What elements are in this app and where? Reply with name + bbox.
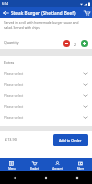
button[interactable]: Please select	[0, 112, 92, 123]
staticText: Menu	[8, 167, 16, 171]
staticText: Please select	[4, 105, 24, 109]
staticText: Please select	[4, 116, 24, 120]
button[interactable]: Account	[46, 158, 69, 171]
staticText: 2	[74, 42, 77, 47]
staticText: 6:14	[2, 2, 8, 6]
staticText: Basket	[30, 167, 39, 171]
staticText: Steak Burger (Shetland Beef)	[11, 10, 76, 16]
staticText: Account	[52, 167, 63, 171]
button[interactable]: Add to Order	[53, 134, 88, 146]
staticText: Served in a roll with homemade burger sa…	[4, 21, 88, 30]
button[interactable]: Back	[0, 7, 11, 18]
staticText: Please select	[4, 94, 24, 98]
button[interactable]: Basket	[23, 158, 46, 171]
staticText: More	[77, 167, 84, 171]
staticText: Add to Order	[59, 138, 82, 143]
button[interactable]: Please select	[0, 90, 92, 101]
button[interactable]: Menu	[0, 158, 23, 171]
button[interactable]: Increase quantity	[81, 40, 88, 47]
button[interactable]: Please select	[0, 79, 92, 90]
button[interactable]: Please select	[0, 101, 92, 112]
staticText: Please select	[4, 72, 24, 76]
button[interactable]: More	[69, 158, 92, 171]
button[interactable]: Please select	[0, 68, 92, 79]
staticText: Extras	[4, 60, 15, 65]
staticText: £13.90	[5, 137, 17, 142]
staticText: Please select	[4, 83, 24, 87]
button[interactable]: Decrease quantity	[63, 40, 70, 47]
button[interactable]: Basket	[81, 7, 92, 18]
staticText: Quantity	[4, 40, 19, 45]
